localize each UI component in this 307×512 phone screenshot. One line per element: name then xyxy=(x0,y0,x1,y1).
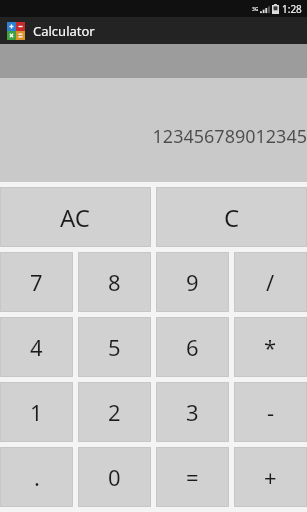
button[interactable]: 7 xyxy=(0,252,73,312)
button[interactable]: 1 xyxy=(0,382,73,442)
staticText: 0 xyxy=(108,462,121,492)
staticText: AC xyxy=(60,201,91,234)
button[interactable]: * xyxy=(234,317,307,377)
staticText: 1:28 xyxy=(282,2,302,16)
button[interactable]: 5 xyxy=(78,317,151,377)
button[interactable]: AC xyxy=(0,187,151,247)
staticText: + xyxy=(264,462,277,492)
button[interactable]: C xyxy=(156,187,307,247)
button[interactable]: 3 xyxy=(156,382,229,442)
staticText: 1 xyxy=(30,397,43,427)
button[interactable]: + xyxy=(234,447,307,507)
staticText: . xyxy=(34,462,40,492)
button[interactable]: 8 xyxy=(78,252,151,312)
button[interactable]: . xyxy=(0,447,73,507)
button[interactable]: 9 xyxy=(156,252,229,312)
staticText: 8 xyxy=(108,267,121,297)
staticText: 5 xyxy=(108,332,121,362)
button[interactable]: 4 xyxy=(0,317,73,377)
staticText: / xyxy=(266,267,275,297)
staticText: 6 xyxy=(186,332,199,362)
button[interactable]: / xyxy=(234,252,307,312)
staticText: C xyxy=(224,201,240,234)
staticText: 123456789012345 xyxy=(152,124,307,149)
staticText: 4 xyxy=(30,332,43,362)
staticText: - xyxy=(267,397,275,427)
staticText: 3 xyxy=(186,397,199,427)
button[interactable]: - xyxy=(234,382,307,442)
staticText: Calculator xyxy=(33,22,95,40)
button[interactable]: = xyxy=(156,447,229,507)
staticText: 9 xyxy=(186,267,199,297)
staticText: 3G xyxy=(252,6,259,13)
button[interactable]: 6 xyxy=(156,317,229,377)
staticText: 2 xyxy=(108,397,121,427)
staticText: = xyxy=(186,462,199,492)
staticText: 7 xyxy=(30,267,43,297)
staticText: * xyxy=(264,332,277,362)
button[interactable]: 0 xyxy=(78,447,151,507)
button[interactable]: 2 xyxy=(78,382,151,442)
